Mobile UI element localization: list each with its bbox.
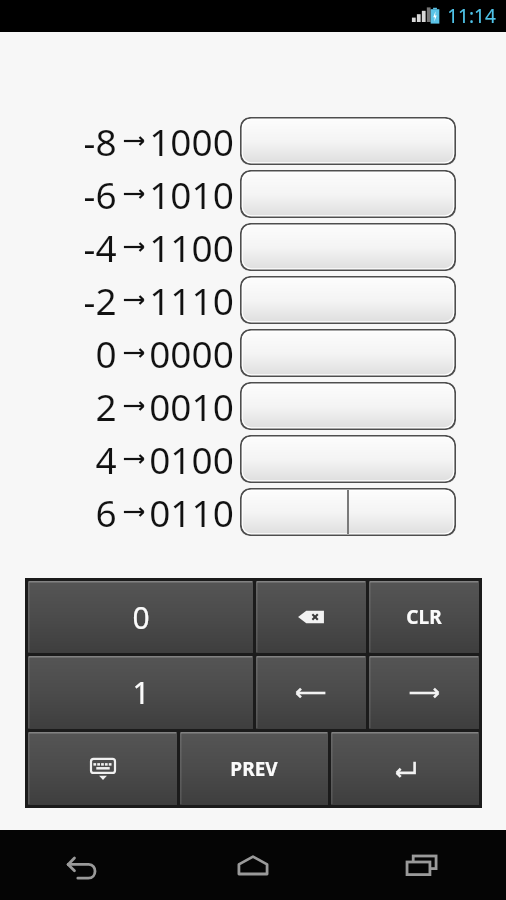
staticText: 1100 — [149, 222, 234, 272]
staticText: 1110 — [149, 275, 234, 325]
staticText: -2 — [83, 275, 117, 325]
staticText: 0 — [95, 328, 117, 378]
button[interactable]: 1 — [28, 656, 253, 729]
button[interactable] — [240, 276, 456, 324]
button[interactable]: CLR — [369, 581, 479, 653]
button[interactable]: Home — [168, 830, 337, 900]
staticText: 0110 — [149, 487, 234, 537]
button[interactable]: Back — [0, 830, 168, 900]
staticText: -8 — [83, 116, 117, 166]
button[interactable]: Move right — [369, 656, 479, 729]
button[interactable]: Move left — [256, 656, 366, 729]
button[interactable] — [240, 435, 456, 483]
staticText: -6 — [83, 169, 117, 219]
staticText: PREV — [230, 756, 278, 782]
button[interactable]: Hide keyboard — [28, 732, 177, 805]
staticText: 1010 — [149, 169, 234, 219]
button[interactable] — [240, 117, 456, 165]
button[interactable] — [240, 382, 456, 430]
staticText: 1 — [132, 672, 150, 713]
staticText: CLR — [406, 604, 442, 630]
staticText: 6 — [95, 487, 117, 537]
staticText: 0100 — [149, 434, 234, 484]
button[interactable]: Recent apps — [337, 830, 506, 900]
staticText: 0010 — [149, 381, 234, 431]
button[interactable]: 0 — [28, 581, 253, 653]
button[interactable]: Enter — [331, 732, 479, 805]
button[interactable] — [240, 223, 456, 271]
staticText: 11:14 — [447, 3, 496, 29]
staticText: 1000 — [149, 116, 234, 166]
button[interactable] — [240, 329, 456, 377]
button[interactable]: Backspace — [256, 581, 366, 653]
staticText: 2 — [95, 381, 117, 431]
staticText: 0000 — [149, 328, 234, 378]
staticText: 4 — [95, 434, 117, 484]
staticText: 0 — [132, 597, 150, 638]
staticText: -4 — [83, 222, 117, 272]
button[interactable] — [240, 170, 456, 218]
button[interactable] — [240, 488, 456, 536]
button[interactable]: PREV — [180, 732, 328, 805]
